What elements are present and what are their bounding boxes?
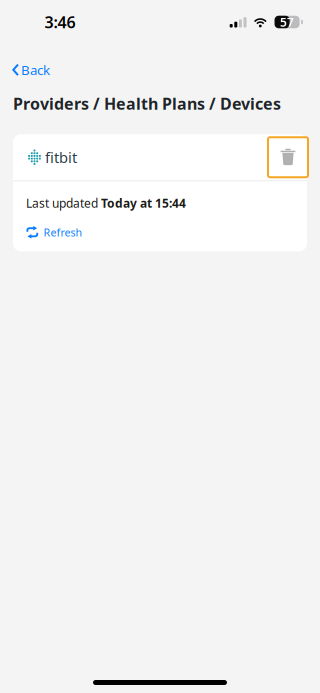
button[interactable]: Delete xyxy=(268,137,308,177)
staticText: Back xyxy=(21,61,50,79)
staticText: Providers / Health Plans / Devices xyxy=(13,93,281,114)
staticText: fitbit xyxy=(45,147,77,167)
staticText: Refresh xyxy=(44,225,83,239)
staticText: 57 xyxy=(280,14,294,30)
button[interactable]: Back xyxy=(0,44,60,83)
staticText: Last updated Today at 15:44 xyxy=(26,195,186,211)
staticText: 3:46 xyxy=(44,11,75,33)
button[interactable]: Refresh xyxy=(13,211,83,251)
